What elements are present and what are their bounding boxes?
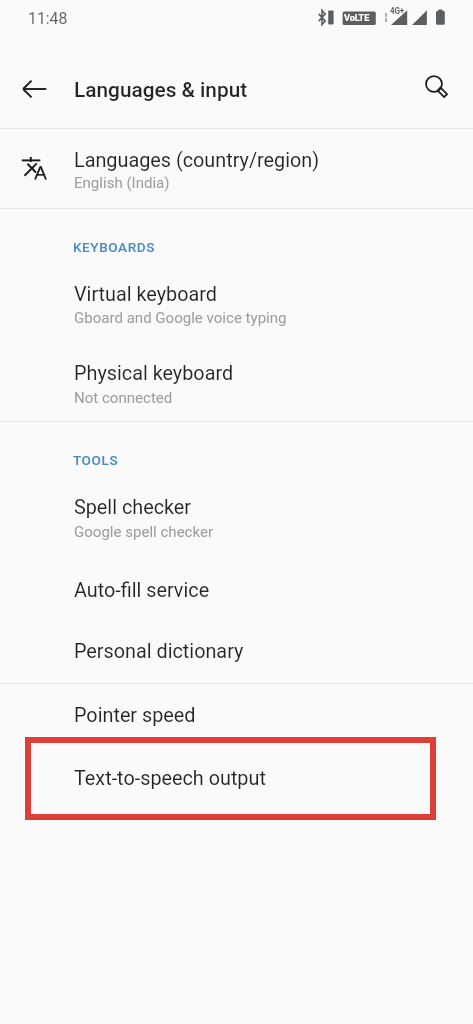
button[interactable]: Languages (country/region) <box>0 129 473 208</box>
staticText: TOOLS <box>73 452 119 468</box>
staticText: Auto-fill service <box>74 579 210 602</box>
staticText: Spell checker <box>74 496 192 519</box>
staticText: Languages & input <box>74 78 248 102</box>
button[interactable]: Navigate up <box>11 65 59 113</box>
button[interactable]: Spell checker <box>0 476 473 556</box>
staticText: Virtual keyboard <box>74 283 217 306</box>
button[interactable]: Pointer speed <box>0 684 473 746</box>
staticText: Gboard and Google voice typing <box>74 309 287 327</box>
staticText: VoLTE <box>344 12 370 23</box>
staticText: Not connected <box>74 389 173 407</box>
staticText: Pointer speed <box>74 704 196 727</box>
staticText: Text-to-speech output <box>74 767 266 790</box>
staticText: Personal dictionary <box>74 640 244 663</box>
staticText: Physical keyboard <box>74 362 234 385</box>
button[interactable]: Personal dictionary <box>0 628 473 683</box>
button[interactable]: Search <box>410 60 458 108</box>
staticText: Google spell checker <box>74 523 214 541</box>
button[interactable]: Physical keyboard <box>0 342 473 421</box>
button[interactable]: Auto-fill service <box>0 567 473 628</box>
staticText: English (India) <box>74 174 170 192</box>
staticText: 4G+ <box>390 6 405 16</box>
staticText: Languages (country/region) <box>74 149 320 172</box>
staticText: 11:48 <box>28 9 68 28</box>
button[interactable]: Text-to-speech output <box>0 746 473 809</box>
button[interactable]: Virtual keyboard <box>0 262 473 342</box>
staticText: KEYBOARDS <box>73 239 155 255</box>
